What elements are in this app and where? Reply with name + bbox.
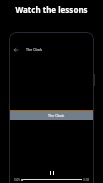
staticText: Watch the lessons (15, 4, 88, 15)
staticText: 3:18 (83, 178, 89, 182)
staticText: 0:05 (14, 178, 20, 182)
button[interactable]: Back (11, 45, 20, 54)
staticText: The Clock (48, 113, 65, 118)
staticText: The Clock (26, 47, 43, 52)
button[interactable]: The Clock (9, 111, 94, 120)
button[interactable]: Pause (45, 166, 59, 180)
